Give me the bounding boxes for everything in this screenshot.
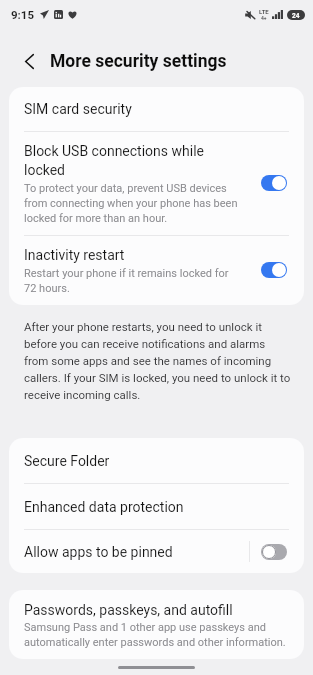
staticText: 24 [292, 12, 300, 19]
button[interactable]: Switch off [261, 544, 287, 560]
staticText: Secure Folder [24, 452, 110, 470]
staticText: LTE [259, 9, 269, 16]
button[interactable]: Secure Folder [9, 438, 304, 483]
button[interactable]: Block USB connections while locked [9, 132, 304, 235]
staticText: Inactivity restart [24, 245, 125, 264]
staticText: Block USB connections while locked [24, 141, 239, 179]
button[interactable]: Enhanced data protection [9, 484, 304, 529]
button[interactable]: Passwords, passkeys, and autofill [9, 590, 304, 659]
staticText: After your phone restarts, you need to u… [24, 317, 291, 402]
staticText: Allow apps to be pinned [24, 543, 173, 561]
button[interactable]: Inactivity restart [9, 236, 304, 305]
staticText: SIM card security [24, 100, 132, 118]
staticText: Passwords, passkeys, and autofill [24, 601, 233, 619]
staticText: 9:15 [11, 7, 35, 22]
staticText: Samsung Pass and 1 other app use passkey… [24, 619, 289, 649]
button[interactable]: Allow apps to be pinned [24, 543, 249, 561]
button[interactable]: Switch on [261, 175, 287, 191]
staticText: Restart your phone if it remains locked … [24, 265, 239, 295]
button[interactable]: SIM card security [9, 87, 304, 131]
button[interactable]: Switch on [261, 262, 287, 278]
staticText: To protect your data, prevent USB device… [24, 180, 239, 225]
staticText: Enhanced data protection [24, 498, 184, 516]
staticText: 4+ [261, 16, 267, 21]
staticText: More security settings [50, 51, 227, 71]
button[interactable]: Navigate up [13, 45, 45, 77]
